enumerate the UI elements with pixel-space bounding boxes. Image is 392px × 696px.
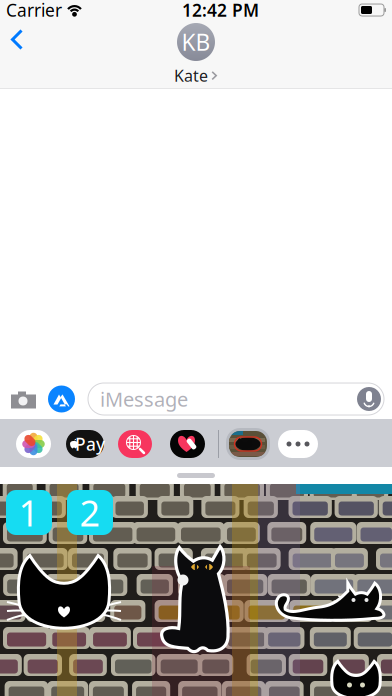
staticText: Carrier <box>6 0 62 21</box>
button[interactable]: Apple Pay <box>66 430 104 458</box>
staticText: Kate <box>174 65 208 86</box>
staticText: iMessage <box>100 386 188 412</box>
button[interactable]: App Store <box>44 382 79 415</box>
button[interactable]: Camera <box>3 382 44 415</box>
button[interactable]: Photos <box>16 430 51 458</box>
staticText: 2 <box>79 489 100 536</box>
button[interactable]: Lying cat sticker <box>269 580 391 622</box>
button[interactable]: 2 <box>67 490 113 535</box>
staticText: Pay <box>75 432 105 455</box>
button[interactable]: Sitting cat sticker <box>169 545 231 653</box>
button[interactable]: More apps <box>278 430 318 458</box>
button[interactable]: KB <box>174 23 218 86</box>
button[interactable]: Images <box>118 430 152 458</box>
button[interactable]: iMessage <box>88 383 384 415</box>
button[interactable]: Back <box>0 20 37 59</box>
button[interactable]: 1 <box>6 490 52 535</box>
button[interactable]: Peeking cat sticker <box>324 658 388 696</box>
staticText: 1 <box>18 489 39 536</box>
button[interactable]: Cat Stickers <box>226 428 270 460</box>
staticText: 12:42 PM <box>182 0 259 21</box>
staticText: KB <box>181 27 210 57</box>
button[interactable]: Cat face sticker <box>6 551 122 641</box>
button[interactable]: Digital Touch <box>170 430 205 458</box>
